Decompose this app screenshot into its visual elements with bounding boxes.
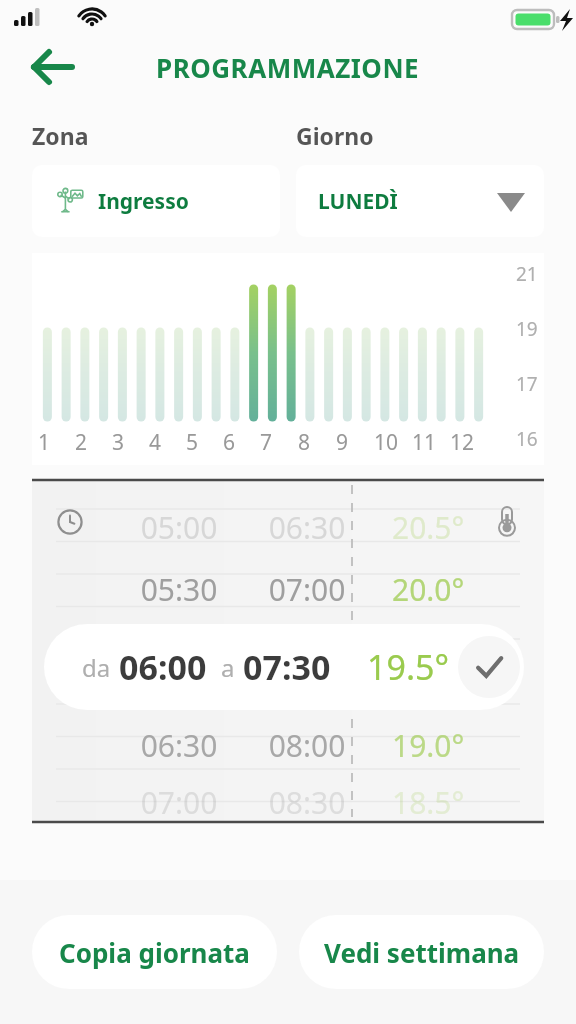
button[interactable]: LUNEDÌ [296, 165, 544, 237]
button[interactable]: 07:00 [32, 781, 544, 823]
staticText: LUNEDÌ [318, 187, 398, 216]
staticText: 07:00 [248, 569, 366, 610]
staticText: da [82, 651, 111, 684]
staticText: 07:30 [243, 644, 331, 690]
staticText: 08:00 [248, 725, 366, 766]
staticText: 4 [149, 428, 186, 457]
staticText: 05:00 [120, 507, 238, 548]
staticText: 2 [75, 428, 112, 457]
staticText: 08:30 [248, 782, 366, 823]
staticText: 17 [516, 371, 538, 397]
button[interactable]: Vedi settimana [299, 915, 544, 989]
button[interactable]: 05:30 [32, 563, 544, 615]
staticText: Zona [32, 120, 280, 151]
staticText: 06:30 [248, 507, 366, 548]
staticText: 20.0° [392, 569, 465, 610]
button[interactable]: 06:30 [32, 719, 544, 771]
staticText: PROGRAMMAZIONE [156, 50, 420, 85]
button[interactable]: Ingresso [32, 165, 280, 237]
staticText: 07:00 [120, 782, 238, 823]
staticText: Vedi settimana [324, 935, 520, 970]
staticText: Ingresso [98, 187, 189, 216]
staticText: Copia giornata [59, 935, 250, 970]
staticText: 20.5° [392, 507, 465, 548]
button[interactable]: 05:00 [32, 501, 544, 553]
staticText: 19.5° [367, 644, 450, 690]
staticText: 06:00 [119, 644, 207, 690]
staticText: 16 [516, 426, 538, 452]
staticText: 19.0° [392, 725, 465, 766]
staticText: 3 [112, 428, 149, 457]
button[interactable]: Confirm [458, 636, 520, 698]
staticText: 10 [374, 428, 412, 457]
staticText: a [221, 651, 235, 684]
staticText: Giorno [296, 120, 544, 151]
staticText: 7 [260, 428, 298, 457]
staticText: 06:30 [120, 725, 238, 766]
staticText: 6 [223, 428, 260, 457]
staticText: 19 [516, 316, 538, 342]
staticText: 21 [516, 261, 538, 287]
staticText: 11 [412, 428, 450, 457]
button[interactable]: Back [22, 39, 78, 95]
staticText: 12 [450, 428, 488, 457]
staticText: 1 [38, 428, 75, 457]
button[interactable]: da [44, 624, 524, 710]
button[interactable]: Copia giornata [32, 915, 277, 989]
staticText: 05:30 [120, 569, 238, 610]
staticText: 18.5° [392, 782, 465, 823]
staticText: 5 [186, 428, 223, 457]
staticText: 9 [336, 428, 374, 457]
staticText: 8 [298, 428, 336, 457]
